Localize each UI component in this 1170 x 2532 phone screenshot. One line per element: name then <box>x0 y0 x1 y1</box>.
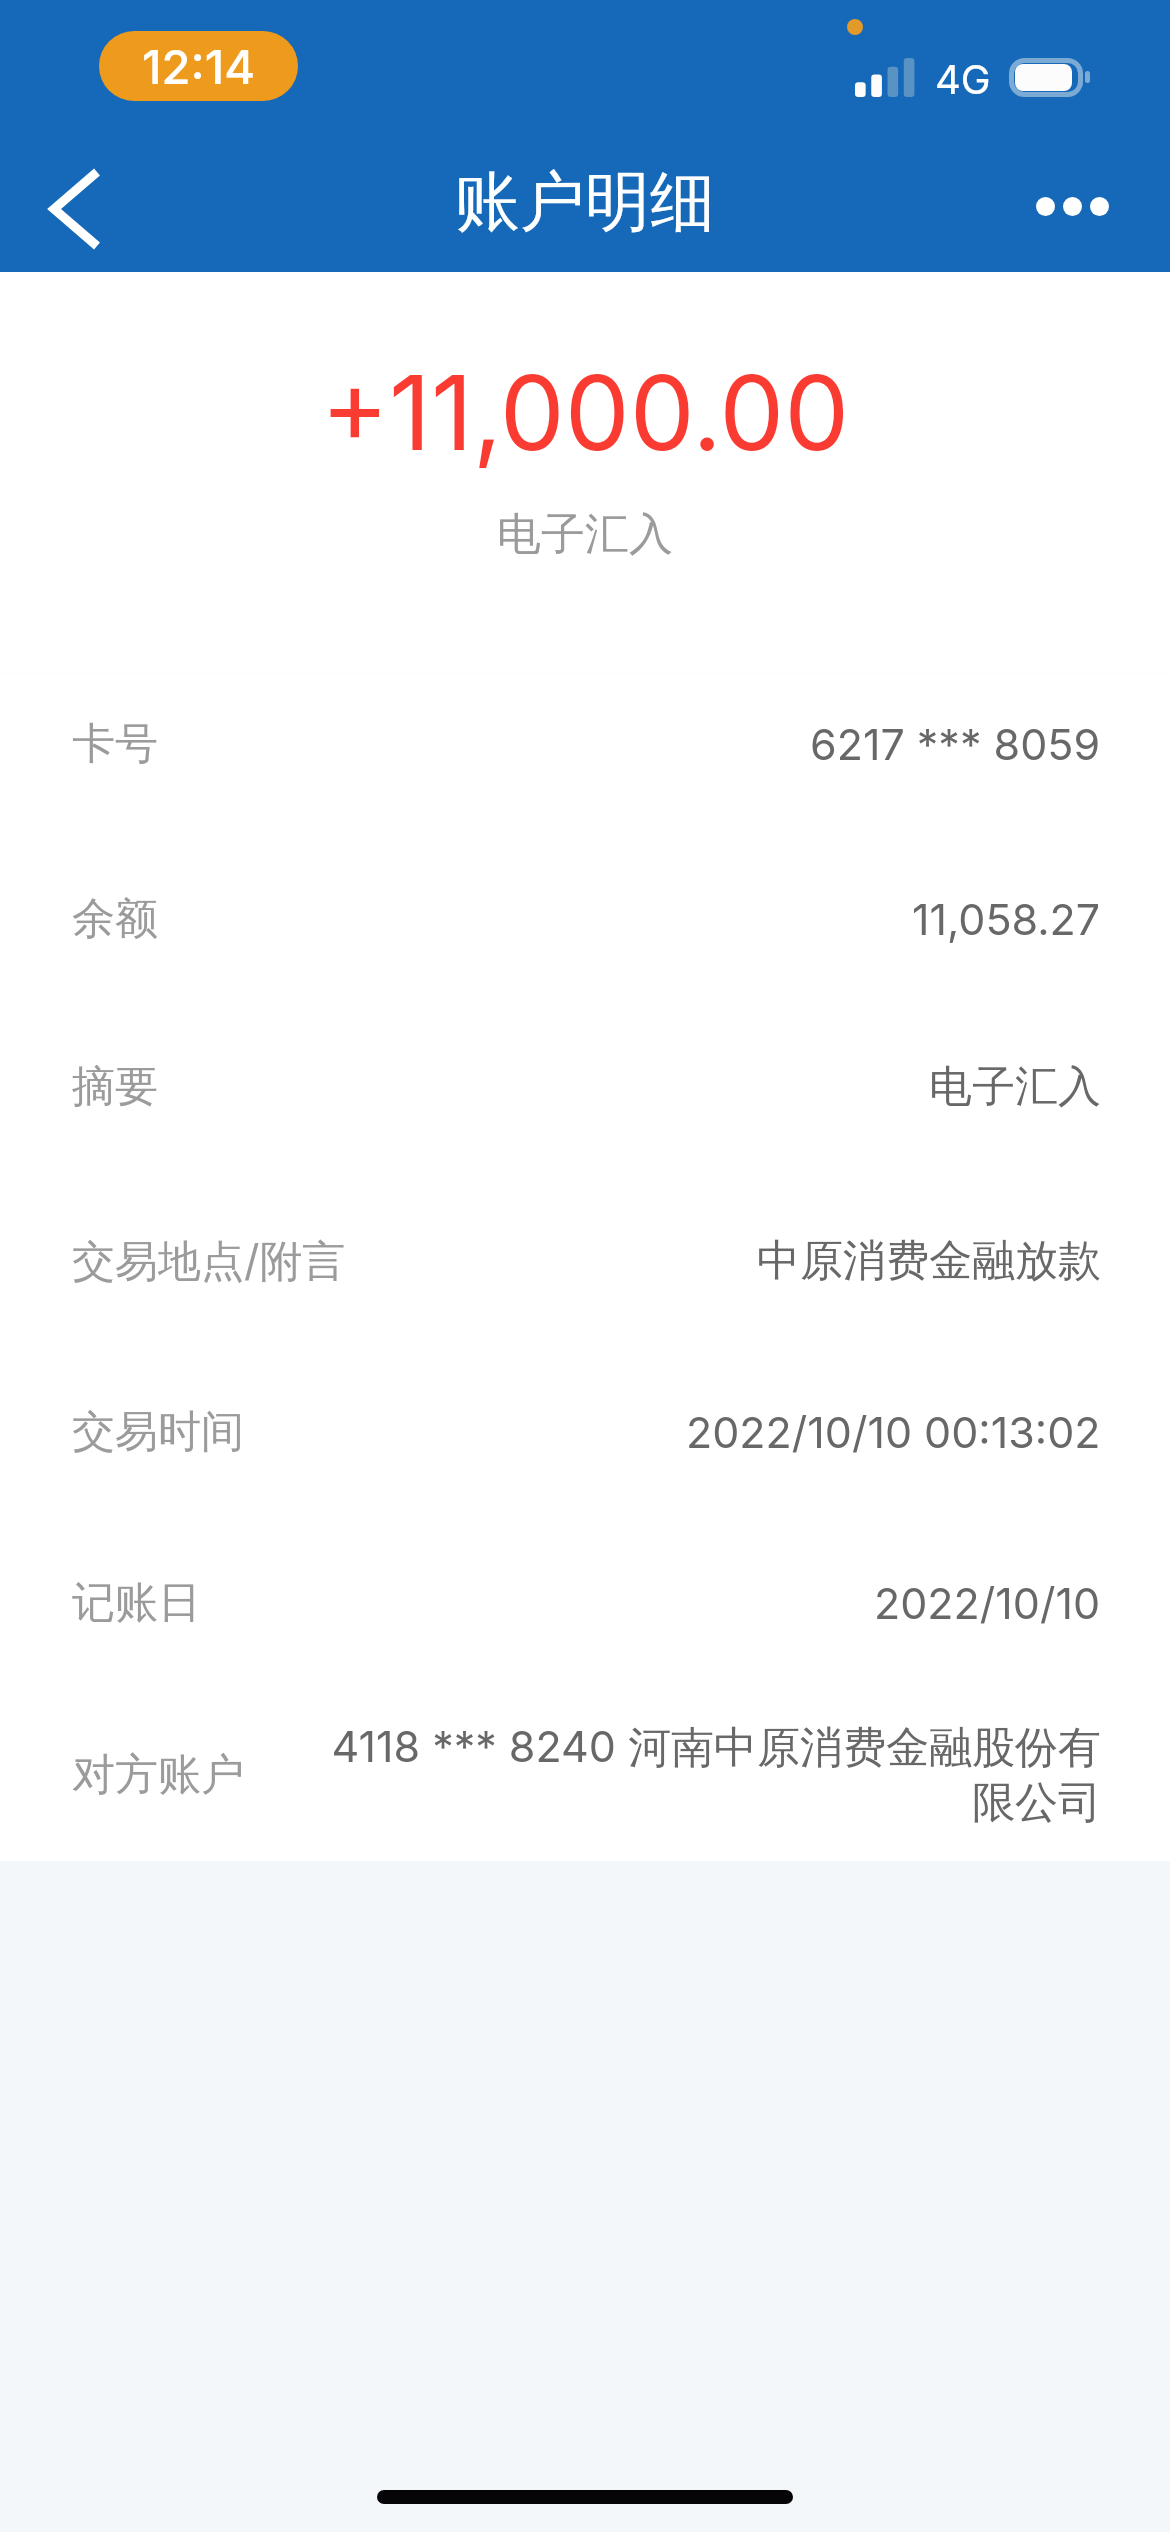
staticText: 6217 *** 8059 <box>810 718 1101 770</box>
staticText: 电子汇入 <box>929 1060 1101 1114</box>
button[interactable]: 卡号 <box>0 658 1170 830</box>
staticText: 账户明细 <box>455 161 715 243</box>
button[interactable]: 记账日 <box>0 1517 1170 1689</box>
staticText: 记账日 <box>72 1576 201 1630</box>
staticText: 11,058.27 <box>912 893 1101 945</box>
staticText: 对方账户 <box>72 1748 244 1802</box>
staticText: +11,000.00 <box>0 350 1170 475</box>
staticText: 交易地点/附言 <box>72 1234 346 1288</box>
button[interactable]: 交易地点/附言 <box>0 1175 1170 1347</box>
button[interactable]: 余额 <box>0 833 1170 1005</box>
staticText: 4118 *** 8240 河南中原消费金融股份有限公司 <box>315 1720 1101 1830</box>
staticText: 2022/10/10 <box>874 1577 1101 1629</box>
staticText: 中原消费金融放款 <box>757 1234 1101 1288</box>
button[interactable]: 交易时间 <box>0 1346 1170 1518</box>
button[interactable]: 对方账户 <box>0 1689 1170 1861</box>
button[interactable]: Back <box>30 160 120 258</box>
staticText: 12:14 <box>142 38 256 95</box>
staticText: 卡号 <box>72 717 158 771</box>
staticText: 交易时间 <box>72 1405 244 1459</box>
staticText: 2022/10/10 00:13:02 <box>686 1406 1101 1458</box>
staticText: 余额 <box>72 892 158 946</box>
button[interactable]: 摘要 <box>0 1001 1170 1173</box>
staticText: 摘要 <box>72 1060 158 1114</box>
staticText: 电子汇入 <box>0 507 1170 562</box>
staticText: 4G <box>935 55 991 103</box>
button[interactable]: More options <box>1036 197 1109 216</box>
